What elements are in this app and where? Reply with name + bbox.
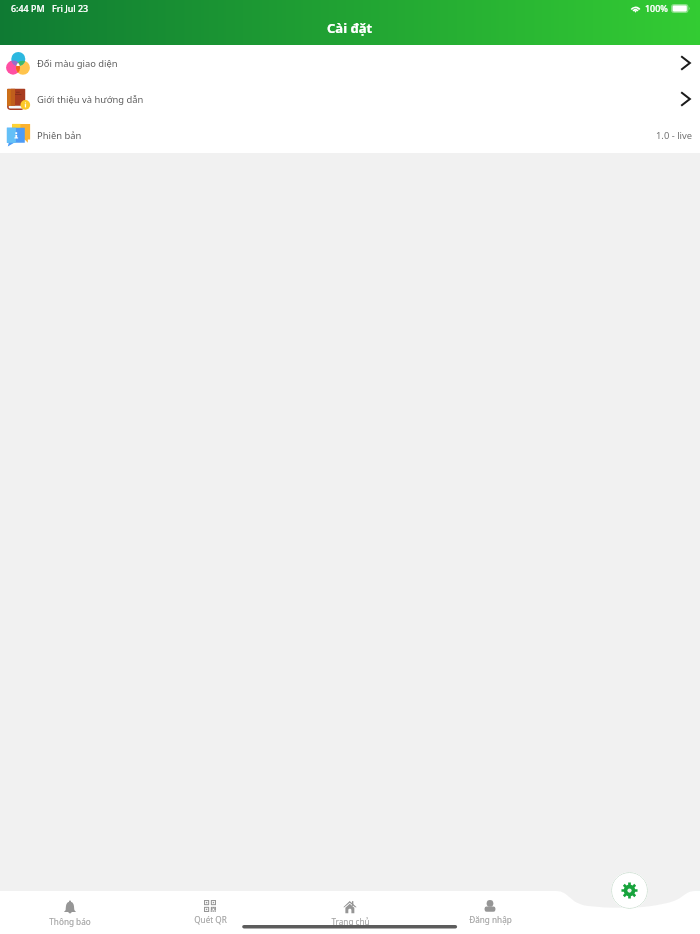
- staticText: Cài đặt: [327, 19, 373, 37]
- button[interactable]: Trang chủ: [280, 891, 420, 934]
- staticText: Thông báo: [49, 916, 91, 927]
- staticText: Giới thiệu và hướng dẫn: [37, 93, 144, 106]
- staticText: 6:44 PM: [11, 2, 45, 14]
- staticText: Quét QR: [194, 914, 227, 925]
- staticText: Fri Jul 23: [52, 2, 89, 14]
- staticText: Phiên bản: [37, 129, 82, 142]
- button[interactable]: Giới thiệu và hướng dẫn: [0, 81, 700, 117]
- staticText: 1.0 - live: [656, 129, 693, 142]
- button[interactable]: Đổi màu giao diện: [0, 45, 700, 81]
- staticText: 100%: [645, 2, 668, 14]
- button[interactable]: Đăng nhập: [420, 891, 560, 934]
- staticText: Đăng nhập: [469, 914, 512, 925]
- button[interactable]: Quét QR: [140, 891, 280, 934]
- button[interactable]: Settings: [611, 872, 648, 909]
- button[interactable]: Phiên bản: [0, 117, 700, 153]
- staticText: Đổi màu giao diện: [37, 57, 118, 70]
- staticText: Trang chủ: [331, 916, 370, 927]
- button[interactable]: Thông báo: [0, 891, 140, 934]
